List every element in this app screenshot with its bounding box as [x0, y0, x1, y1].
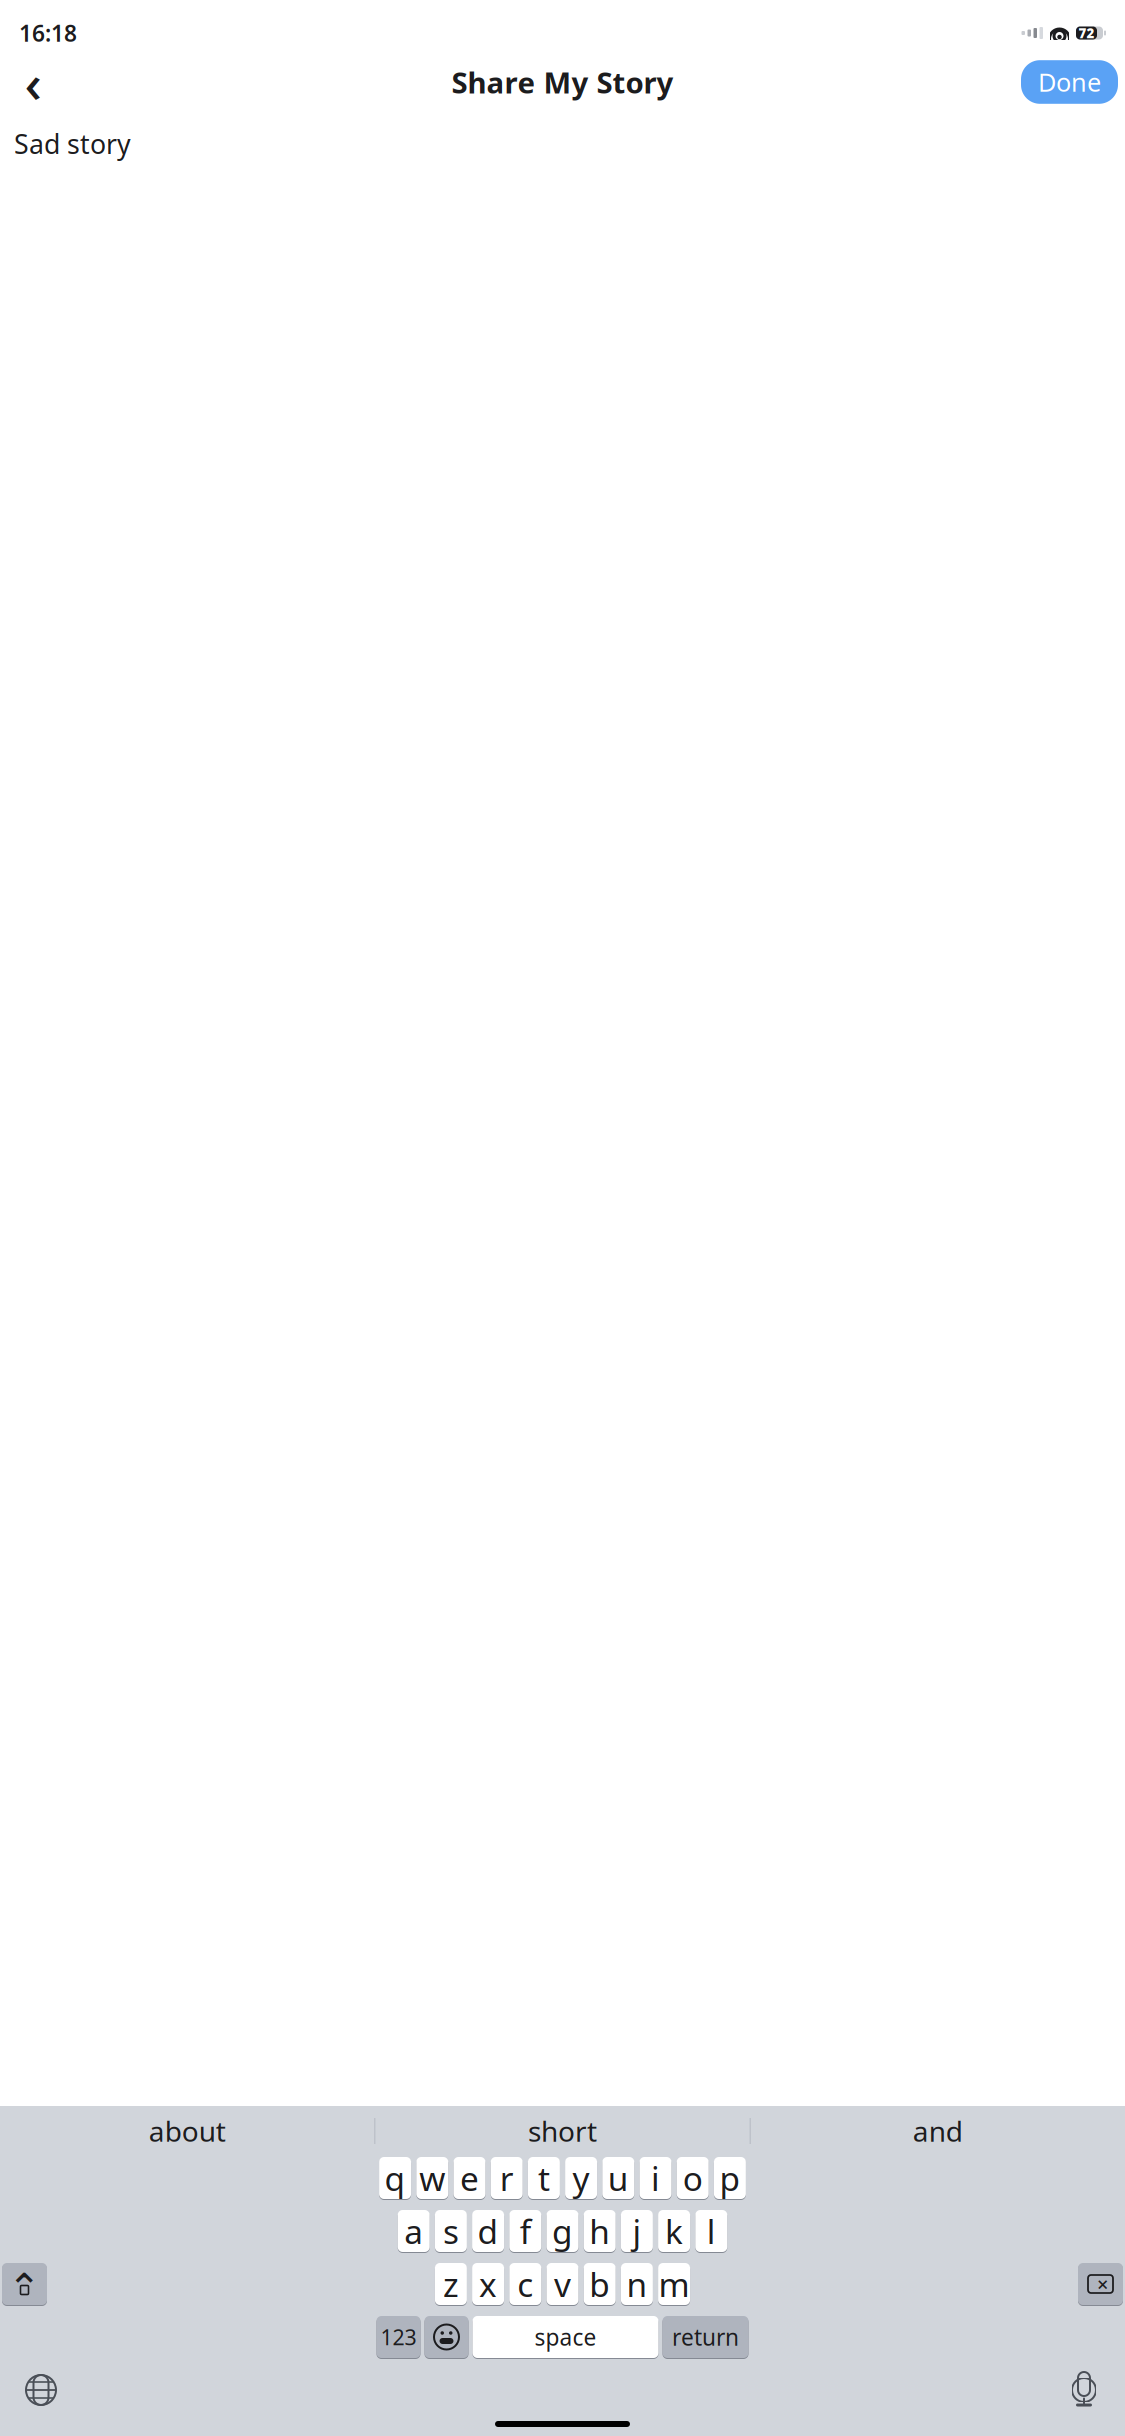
- staticText: 123: [380, 2323, 416, 2351]
- staticText: f: [520, 2209, 531, 2253]
- staticText: m: [659, 2262, 690, 2306]
- button[interactable]: q: [379, 2156, 411, 2200]
- staticText: c: [517, 2262, 533, 2306]
- button[interactable]: short: [375, 2108, 750, 2154]
- button[interactable]: b: [584, 2262, 616, 2306]
- staticText: ⌃: [7, 2265, 41, 2311]
- staticText: n: [626, 2262, 647, 2306]
- button[interactable]: n: [621, 2262, 653, 2306]
- button[interactable]: about: [0, 2108, 374, 2154]
- staticText: d: [478, 2209, 499, 2253]
- staticText: short: [528, 2112, 597, 2150]
- button[interactable]: and: [751, 2108, 1125, 2154]
- staticText: ×: [1097, 2271, 1108, 2297]
- button[interactable]: Back: [13, 62, 53, 102]
- staticText: Done: [1038, 65, 1101, 99]
- staticText: u: [608, 2156, 629, 2200]
- button[interactable]: j: [621, 2209, 653, 2253]
- button[interactable]: u: [602, 2156, 634, 2200]
- staticText: l: [707, 2209, 716, 2253]
- staticText: o: [683, 2156, 703, 2200]
- staticText: 16:18: [19, 18, 77, 48]
- button[interactable]: i: [639, 2156, 671, 2200]
- button[interactable]: w: [416, 2156, 448, 2200]
- staticText: space: [534, 2322, 596, 2352]
- staticText: x: [479, 2262, 497, 2306]
- button[interactable]: Shift: [2, 2262, 47, 2306]
- button[interactable]: Next keyboard: [14, 2363, 68, 2417]
- button[interactable]: Dictate: [1057, 2363, 1111, 2417]
- button[interactable]: o: [677, 2156, 709, 2200]
- button[interactable]: a: [398, 2209, 430, 2253]
- staticText: s: [443, 2209, 459, 2253]
- button[interactable]: r: [491, 2156, 523, 2200]
- button[interactable]: l: [695, 2209, 727, 2253]
- staticText: return: [672, 2322, 739, 2352]
- staticText: v: [554, 2262, 571, 2306]
- button[interactable]: e: [453, 2156, 485, 2200]
- button[interactable]: Space: [472, 2315, 658, 2359]
- staticText: Share My Story: [451, 62, 673, 101]
- button[interactable]: k: [658, 2209, 690, 2253]
- staticText: q: [385, 2156, 406, 2200]
- button[interactable]: Delete: [1078, 2262, 1123, 2306]
- button[interactable]: Return: [662, 2315, 748, 2359]
- button[interactable]: f: [509, 2209, 541, 2253]
- button[interactable]: t: [528, 2156, 560, 2200]
- staticText: j: [632, 2209, 641, 2253]
- staticText: k: [665, 2209, 683, 2253]
- staticText: z: [443, 2262, 459, 2306]
- staticText: about: [149, 2112, 226, 2150]
- button[interactable]: Emoji: [424, 2315, 468, 2359]
- staticText: b: [589, 2262, 610, 2306]
- button[interactable]: Done: [1021, 60, 1118, 104]
- button[interactable]: x: [472, 2262, 504, 2306]
- staticText: p: [719, 2156, 740, 2200]
- button[interactable]: v: [546, 2262, 578, 2306]
- button[interactable]: m: [658, 2262, 690, 2306]
- staticText: 72: [1078, 24, 1094, 42]
- button[interactable]: z: [435, 2262, 467, 2306]
- staticText: Sad story: [14, 126, 131, 161]
- staticText: w: [419, 2156, 445, 2200]
- staticText: g: [552, 2209, 573, 2253]
- button[interactable]: y: [565, 2156, 597, 2200]
- staticText: i: [651, 2156, 660, 2200]
- staticText: t: [538, 2156, 550, 2200]
- button[interactable]: Numbers: [376, 2315, 420, 2359]
- button[interactable]: s: [435, 2209, 467, 2253]
- staticText: r: [500, 2156, 514, 2200]
- staticText: a: [404, 2209, 423, 2253]
- staticText: and: [913, 2112, 963, 2150]
- staticText: ‹: [24, 47, 41, 117]
- button[interactable]: c: [509, 2262, 541, 2306]
- button[interactable]: g: [546, 2209, 578, 2253]
- button[interactable]: p: [714, 2156, 746, 2200]
- staticText: h: [589, 2209, 610, 2253]
- button[interactable]: h: [584, 2209, 616, 2253]
- staticText: y: [573, 2156, 590, 2200]
- staticText: e: [460, 2156, 479, 2200]
- button[interactable]: d: [472, 2209, 504, 2253]
